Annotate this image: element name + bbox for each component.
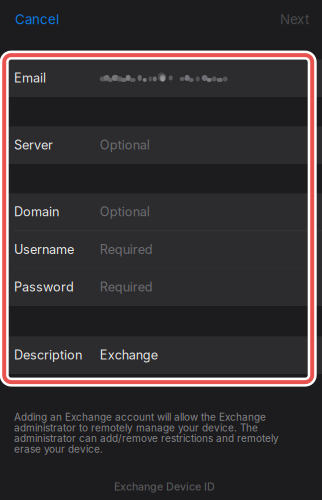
staticText: Description (14, 347, 82, 362)
staticText: Cancel (15, 11, 59, 27)
button[interactable]: Cancel (0, 0, 69, 34)
staticText: Next (280, 11, 309, 27)
button[interactable]: Email (0, 59, 322, 97)
button[interactable]: Password (0, 268, 322, 306)
button[interactable]: Username (0, 231, 322, 268)
button[interactable]: Server (0, 126, 322, 164)
staticText: Password (14, 279, 74, 295)
button[interactable]: Next (270, 0, 322, 34)
staticText: administrator can add/remove restriction… (14, 432, 279, 444)
staticText: Server (14, 137, 53, 152)
button[interactable]: Domain (0, 193, 322, 231)
staticText: Optional (100, 137, 150, 152)
staticText: Domain (14, 204, 59, 219)
staticText: Required (100, 242, 153, 257)
staticText: Optional (100, 204, 150, 219)
staticText: Email (14, 70, 46, 86)
staticText: Exchange (100, 347, 158, 362)
staticText: Required (100, 279, 153, 295)
staticText: Adding an Exchange account will allow th… (14, 411, 266, 423)
staticText: Exchange Device ID (114, 480, 215, 493)
button[interactable]: Description (0, 336, 322, 374)
staticText: erase your device. (14, 443, 103, 455)
staticText: administrator to remotely manage your de… (14, 422, 258, 434)
staticText: Username (14, 242, 74, 257)
button[interactable]: Exchange Device ID (0, 474, 322, 500)
